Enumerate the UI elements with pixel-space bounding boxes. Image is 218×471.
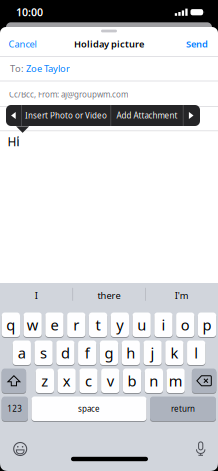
button[interactable]: Emoji — [14, 442, 27, 455]
staticText: c — [85, 371, 92, 390]
button[interactable]: z — [36, 368, 54, 393]
staticText: i — [161, 315, 165, 334]
button[interactable]: f — [78, 340, 96, 365]
staticText: s — [40, 343, 47, 362]
button[interactable]: there — [79, 284, 139, 306]
staticText: y — [116, 315, 123, 334]
staticText: x — [63, 371, 71, 390]
staticText: p — [203, 315, 212, 334]
button[interactable]: l — [187, 340, 205, 365]
staticText: g — [104, 343, 113, 362]
staticText: I'm — [175, 289, 189, 301]
staticText: Hi — [7, 133, 19, 149]
staticText: w — [27, 315, 39, 334]
staticText: Insert Photo or Video — [25, 110, 107, 121]
button[interactable]: h — [122, 340, 140, 365]
button[interactable]: Dictate — [196, 443, 206, 456]
staticText: d — [61, 343, 70, 362]
button[interactable]: Cc/Bcc, From: aj@groupwm.com — [9, 89, 207, 100]
button[interactable]: u — [132, 312, 151, 337]
button[interactable]: return — [150, 396, 216, 421]
button[interactable]: Next menu items — [189, 112, 194, 119]
staticText: v — [107, 371, 114, 390]
staticText: e — [50, 315, 58, 334]
button[interactable]: w — [23, 312, 42, 337]
staticText: j — [151, 343, 155, 362]
button[interactable]: x — [57, 368, 76, 393]
button[interactable]: n — [145, 368, 163, 393]
button[interactable]: s — [34, 340, 53, 365]
button[interactable]: o — [176, 312, 194, 337]
button[interactable]: 123 — [2, 396, 28, 421]
staticText: o — [181, 315, 190, 334]
staticText: return — [171, 403, 195, 414]
staticText: 10:00 — [16, 5, 43, 19]
button[interactable]: Send — [186, 38, 208, 50]
staticText: u — [137, 315, 146, 334]
staticText: Send — [186, 38, 208, 50]
button[interactable]: r — [67, 312, 85, 337]
button[interactable]: p — [198, 312, 216, 337]
button[interactable]: d — [56, 340, 75, 365]
staticText: f — [85, 343, 90, 362]
staticText: Zoe Taylor — [26, 62, 70, 75]
staticText: I — [35, 289, 38, 301]
button[interactable]: y — [111, 312, 129, 337]
button[interactable]: Delete — [192, 368, 216, 393]
staticText: space — [78, 403, 100, 414]
button[interactable]: a — [13, 340, 31, 365]
staticText: k — [170, 343, 178, 362]
button[interactable]: q — [2, 312, 20, 337]
button[interactable]: Shift — [2, 368, 26, 393]
button[interactable]: I'm — [152, 284, 212, 306]
button[interactable]: Add Attachment — [116, 110, 177, 121]
staticText: 123 — [7, 403, 22, 414]
staticText: m — [169, 371, 183, 390]
button[interactable]: Zoe Taylor — [26, 62, 70, 75]
button[interactable]: I — [6, 284, 66, 306]
button[interactable]: g — [100, 340, 118, 365]
staticText: Cc/Bcc, From: aj@groupwm.com — [9, 89, 128, 100]
button[interactable]: Cancel — [8, 38, 36, 50]
staticText: Holiday picture — [74, 38, 144, 50]
button[interactable]: e — [45, 312, 64, 337]
staticText: l — [194, 343, 198, 362]
button[interactable]: m — [166, 368, 185, 393]
button[interactable]: Previous menu items — [11, 112, 16, 119]
button[interactable]: b — [123, 368, 141, 393]
button[interactable]: k — [165, 340, 183, 365]
staticText: there — [97, 289, 120, 301]
button[interactable]: j — [143, 340, 162, 365]
button[interactable]: space — [31, 396, 146, 421]
staticText: To: — [10, 62, 24, 75]
staticText: Cancel — [8, 38, 36, 50]
staticText: b — [128, 371, 137, 390]
staticText: a — [18, 343, 26, 362]
button[interactable]: Insert Photo or Video — [25, 110, 107, 121]
staticText: Add Attachment — [116, 110, 177, 121]
staticText: z — [41, 371, 48, 390]
button[interactable]: i — [154, 312, 173, 337]
staticText: q — [6, 315, 15, 334]
button[interactable]: t — [89, 312, 107, 337]
staticText: r — [73, 315, 79, 334]
staticText: h — [126, 343, 135, 362]
button[interactable]: v — [101, 368, 119, 393]
staticText: t — [96, 315, 101, 334]
button[interactable]: c — [79, 368, 98, 393]
staticText: n — [149, 371, 158, 390]
